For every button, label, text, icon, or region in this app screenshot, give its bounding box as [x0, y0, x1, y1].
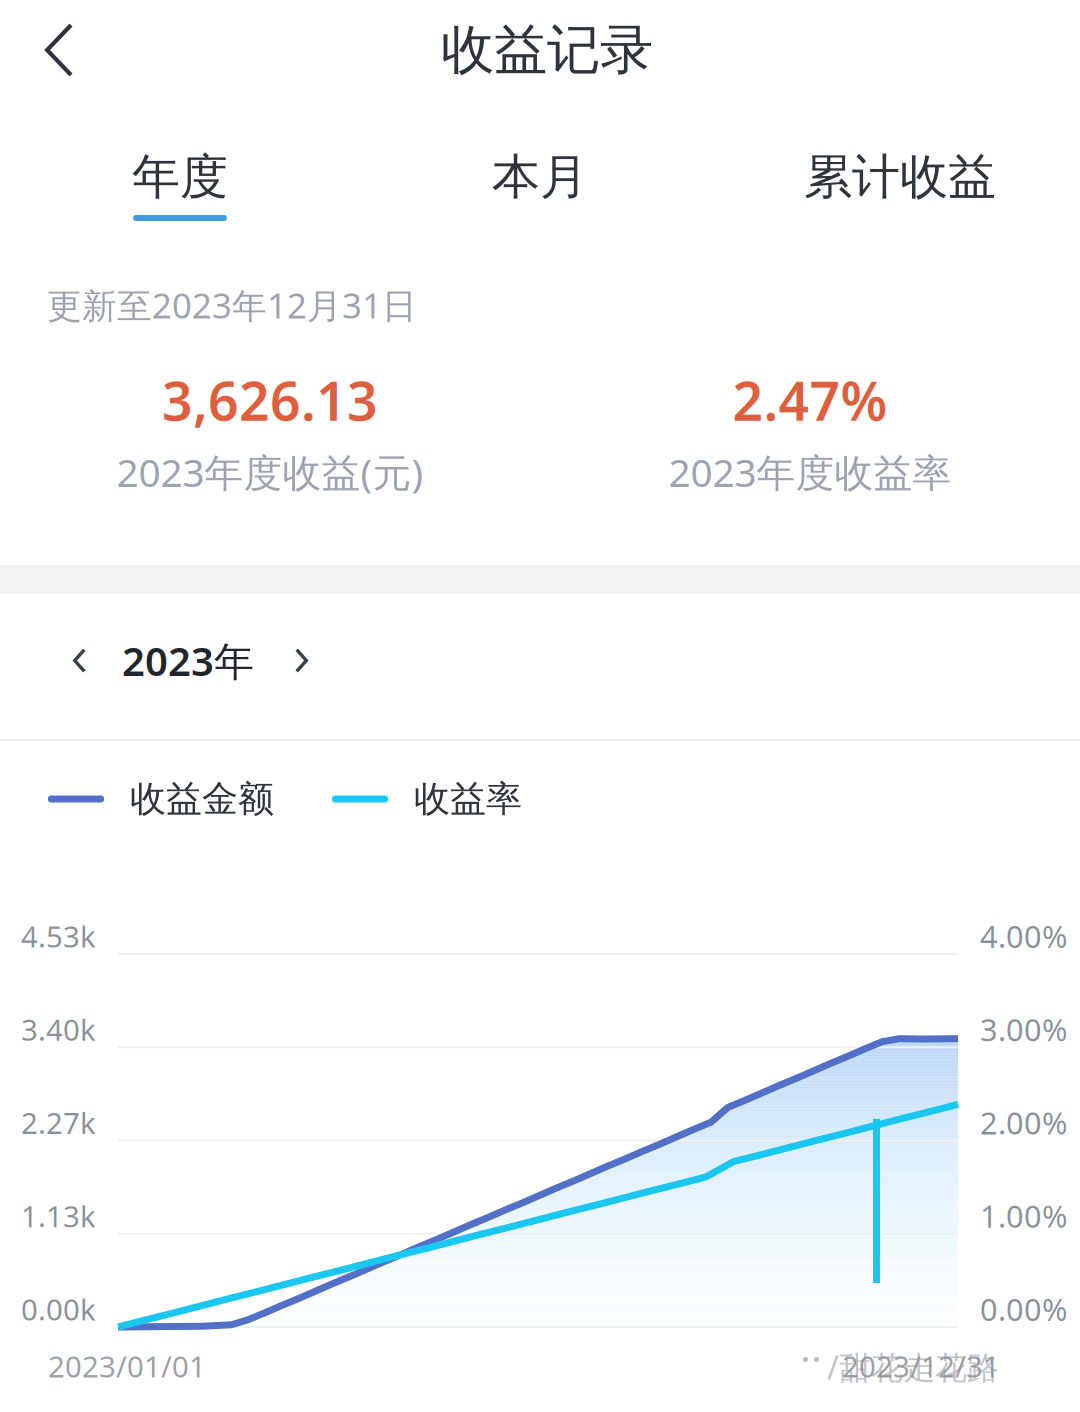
staticText: 累计收益 — [804, 147, 996, 206]
staticText: 0.00% — [980, 1289, 1067, 1329]
staticText: 4.00% — [980, 916, 1067, 956]
button[interactable]: 年度 — [0, 100, 360, 236]
staticText: 1.13k — [21, 1196, 96, 1235]
staticText: 本月 — [492, 147, 588, 206]
staticText: 2023年度收益(元) — [116, 446, 423, 498]
staticText: 2.27k — [21, 1103, 96, 1142]
staticText: 1.00% — [980, 1195, 1067, 1236]
staticText: 3,626.13 — [162, 365, 378, 435]
button[interactable]: 本月 — [360, 100, 720, 236]
staticText: 2023/12/31 — [842, 1346, 1000, 1385]
staticText: 收益率 — [414, 777, 522, 821]
staticText: 收益金额 — [130, 777, 274, 821]
staticText: 2.00% — [980, 1102, 1067, 1143]
button[interactable]: 收益率 — [332, 777, 522, 821]
staticText: 年度 — [132, 147, 228, 206]
button[interactable]: 收益金额 — [48, 777, 274, 821]
button[interactable]: 返回 — [0, 1, 105, 99]
staticText: 更新至2023年12月31日 — [47, 282, 417, 328]
staticText: 2.47% — [732, 365, 887, 435]
staticText: 2023/01/01 — [48, 1346, 206, 1385]
button[interactable]: 上一年 — [54, 624, 105, 709]
staticText: 4.53k — [21, 916, 96, 955]
button[interactable]: 下一年 — [276, 624, 327, 709]
staticText: 收益记录 — [441, 17, 653, 83]
staticText: 3.40k — [21, 1010, 96, 1049]
staticText: /甜花走花路 — [827, 1346, 999, 1388]
staticText: 3.00% — [980, 1009, 1067, 1050]
staticText: 0.00k — [21, 1289, 96, 1328]
button[interactable]: 累计收益 — [720, 100, 1080, 236]
staticText: 2023年 — [122, 634, 254, 687]
staticText: 2023年度收益率 — [668, 446, 951, 498]
